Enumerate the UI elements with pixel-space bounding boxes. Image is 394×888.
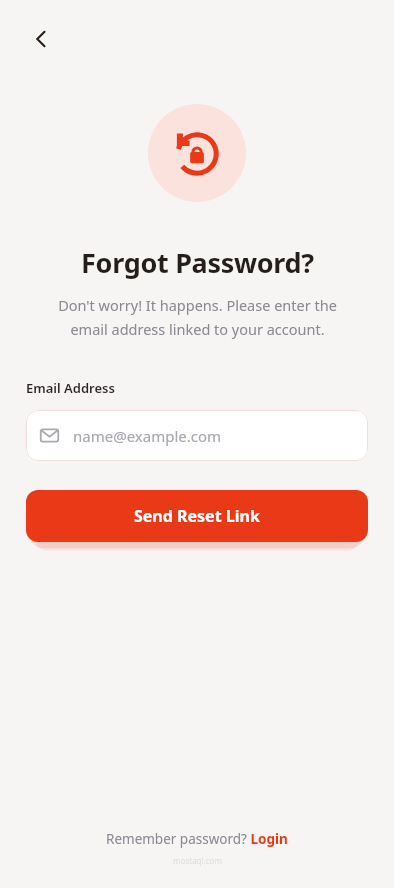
button[interactable]: Remember password? Login <box>100 827 294 851</box>
staticText: Remember password? Login <box>106 830 288 848</box>
staticText: Forgot Password? <box>81 244 314 281</box>
staticText: Send Reset Link <box>134 505 260 527</box>
button[interactable]: Back <box>20 18 62 60</box>
staticText: Email Address <box>26 379 115 397</box>
staticText: name@example.com <box>73 426 222 446</box>
staticText: mostaql.com <box>173 855 222 866</box>
button[interactable]: name@example.com <box>26 410 368 461</box>
button[interactable]: Send Reset Link <box>26 490 368 542</box>
staticText: Don't worry! It happens. Please enter th… <box>58 295 337 339</box>
